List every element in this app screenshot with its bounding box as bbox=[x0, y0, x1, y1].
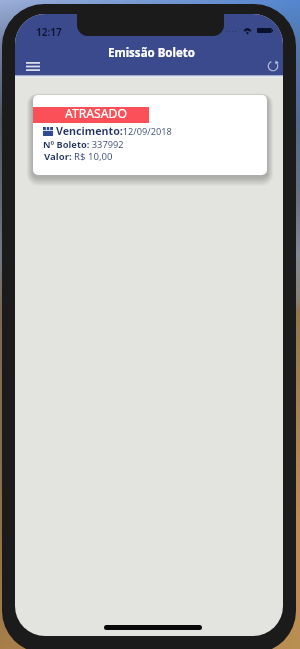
button[interactable]: Refresh bbox=[260, 53, 283, 79]
staticText: Vencimento:12/09/2018 bbox=[56, 124, 172, 139]
other: Mobile signal bbox=[226, 30, 236, 33]
staticText: Nº Boleto: 337992 bbox=[43, 138, 124, 151]
staticText: 12:17 bbox=[36, 25, 62, 39]
staticText: ATRASADO bbox=[65, 105, 127, 121]
staticText: Valor: R$ 10,00 bbox=[44, 150, 113, 163]
other: Wi-Fi bbox=[243, 28, 252, 34]
button[interactable]: ATRASADO bbox=[33, 95, 267, 175]
button[interactable]: Open navigation menu bbox=[19, 53, 46, 80]
staticText: Emissão Boleto bbox=[108, 45, 196, 61]
other: Battery bbox=[257, 28, 273, 33]
